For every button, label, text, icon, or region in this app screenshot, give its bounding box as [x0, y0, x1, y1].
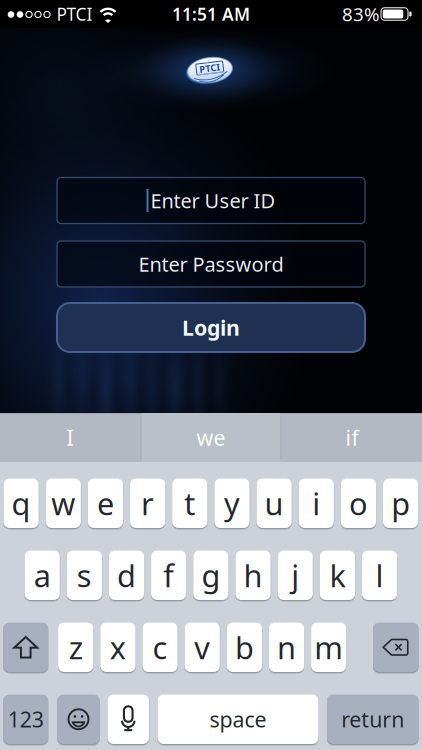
button[interactable]: 123 [3, 694, 48, 744]
button[interactable]: y [214, 478, 250, 528]
staticText: h [244, 555, 263, 596]
staticText: 123 [8, 705, 44, 733]
staticText: m [314, 627, 343, 668]
staticText: y [224, 483, 240, 524]
button[interactable]: m [311, 622, 346, 672]
button[interactable]: j [278, 550, 313, 600]
button[interactable]: t [172, 478, 207, 528]
button[interactable]: s [67, 550, 102, 600]
staticText: 11:51 AM [172, 2, 250, 25]
staticText: Enter User ID [150, 187, 275, 214]
staticText: l [376, 555, 384, 596]
staticText: return [341, 705, 404, 733]
button[interactable]: u [256, 478, 292, 528]
button[interactable]: q [3, 478, 39, 528]
button[interactable]: h [235, 550, 271, 600]
button[interactable]: r [130, 478, 165, 528]
button[interactable]: n [269, 622, 304, 672]
button[interactable]: o [341, 478, 376, 528]
button[interactable]: x [100, 622, 135, 672]
staticText: b [235, 627, 254, 668]
button[interactable]: space [157, 694, 318, 744]
staticText: s [77, 555, 92, 596]
staticText: v [194, 627, 210, 668]
staticText: I [66, 423, 73, 452]
button[interactable]: Dictate [107, 694, 149, 744]
button[interactable]: Login [57, 303, 365, 352]
staticText: PTCI [56, 2, 92, 25]
staticText: n [277, 627, 296, 668]
button[interactable]: Enter Password [57, 241, 365, 287]
button[interactable]: Enter User ID [57, 177, 365, 223]
staticText: f [163, 555, 174, 596]
button[interactable]: Emoji [57, 694, 99, 744]
staticText: c [152, 627, 167, 668]
staticText: PTCI [199, 62, 220, 74]
staticText: k [329, 555, 345, 596]
button[interactable]: p [383, 478, 418, 528]
staticText: a [34, 555, 51, 596]
button[interactable]: l [362, 550, 397, 600]
staticText: if [345, 423, 358, 452]
staticText: t [184, 483, 195, 524]
button[interactable]: f [151, 550, 186, 600]
staticText: r [141, 483, 154, 524]
button[interactable]: v [185, 622, 220, 672]
button[interactable]: we [141, 413, 281, 462]
button[interactable]: if [282, 413, 422, 462]
button[interactable]: Shift [3, 622, 48, 672]
staticText: g [201, 555, 220, 596]
staticText: Login [182, 313, 240, 342]
staticText: q [12, 483, 31, 524]
button[interactable]: c [142, 622, 178, 672]
staticText: w [51, 483, 75, 524]
staticText: d [117, 555, 136, 596]
button[interactable]: z [58, 622, 93, 672]
staticText: Enter Password [138, 251, 283, 277]
staticText: u [265, 483, 284, 524]
button[interactable]: g [193, 550, 228, 600]
button[interactable]: e [88, 478, 123, 528]
staticText: i [312, 483, 320, 524]
button[interactable]: k [320, 550, 355, 600]
staticText: we [196, 423, 225, 452]
staticText: o [349, 483, 368, 524]
staticText: space [209, 705, 266, 733]
staticText: p [391, 483, 410, 524]
staticText: e [97, 483, 114, 524]
button[interactable]: w [46, 478, 81, 528]
button[interactable]: Delete [373, 622, 418, 672]
staticText: j [291, 555, 299, 596]
button[interactable]: a [25, 550, 60, 600]
button[interactable]: d [109, 550, 144, 600]
staticText: z [69, 627, 83, 668]
button[interactable]: i [299, 478, 334, 528]
staticText: x [110, 627, 126, 668]
staticText: 83% [342, 2, 380, 26]
button[interactable]: b [227, 622, 262, 672]
button[interactable]: return [327, 694, 418, 744]
button[interactable]: I [0, 413, 140, 462]
